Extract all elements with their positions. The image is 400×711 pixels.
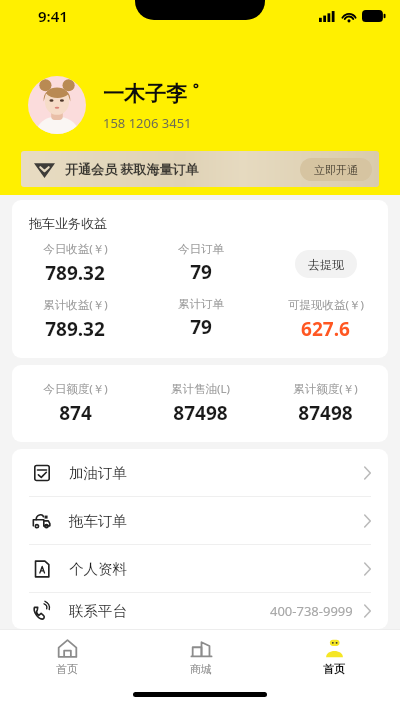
staticText: 79	[190, 259, 212, 285]
staticText: 个人资料	[69, 560, 127, 578]
staticText: 一木子李 ˚	[103, 79, 200, 108]
button[interactable]: 一木子李 ˚	[28, 76, 400, 134]
staticText: 87498	[298, 400, 353, 426]
staticText: 今日订单	[178, 242, 224, 256]
staticText: 去提现	[308, 257, 344, 272]
staticText: 400-738-9999	[270, 602, 353, 620]
staticText: 今日收益(￥)	[43, 241, 108, 257]
button[interactable]: 商城	[134, 630, 267, 683]
staticText: 789.32	[45, 260, 105, 286]
staticText: 首页	[56, 662, 78, 676]
button[interactable]: 首页	[267, 630, 400, 683]
staticText: 可提现收益(￥)	[288, 297, 364, 313]
staticText: 首页	[323, 662, 345, 676]
staticText: 累计收益(￥)	[43, 297, 108, 313]
button[interactable]: 个人资料	[12, 545, 388, 592]
button[interactable]: 去提现	[295, 250, 357, 278]
button[interactable]: 联系平台	[12, 593, 388, 629]
staticText: 商城	[190, 662, 212, 676]
button[interactable]: 加油订单	[12, 449, 388, 496]
staticText: 累计售油(L)	[171, 381, 230, 397]
staticText: 874	[59, 400, 92, 426]
staticText: 158 1206 3451	[103, 114, 192, 132]
staticText: 9:41	[38, 6, 68, 26]
staticText: 拖车业务收益	[29, 215, 107, 231]
staticText: 87498	[173, 400, 228, 426]
staticText: 加油订单	[69, 464, 127, 482]
staticText: 79	[190, 314, 212, 340]
button[interactable]: 开通会员 获取海量订单	[21, 151, 379, 187]
button[interactable]: 立即开通	[300, 158, 372, 181]
staticText: 789.32	[45, 316, 105, 342]
staticText: 拖车订单	[69, 512, 127, 530]
staticText: 今日额度(￥)	[43, 381, 108, 397]
staticText: 627.6	[301, 316, 350, 342]
button[interactable]: 首页	[0, 630, 134, 683]
staticText: 累计订单	[178, 297, 224, 311]
staticText: 联系平台	[69, 602, 127, 620]
staticText: 开通会员 获取海量订单	[65, 160, 199, 178]
button[interactable]: 拖车订单	[12, 497, 388, 544]
staticText: 累计额度(￥)	[293, 381, 358, 397]
staticText: 立即开通	[314, 163, 358, 177]
